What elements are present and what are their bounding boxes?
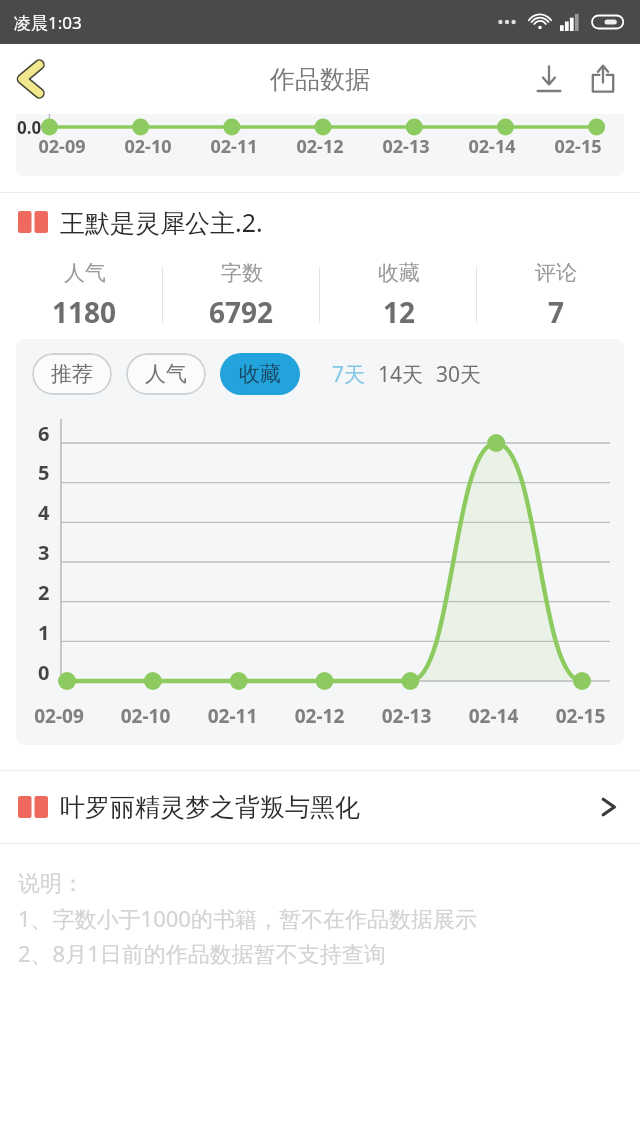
staticText: 7 — [548, 293, 565, 331]
staticText: 2、8月1日前的作品数据暂不支持查询 — [18, 938, 386, 968]
staticText: 02-10 — [105, 134, 191, 159]
staticText: 凌晨1:03 — [14, 11, 82, 34]
staticText: 3 — [38, 539, 50, 566]
staticText: 收藏 — [378, 260, 420, 286]
staticText: 推荐 — [51, 361, 93, 387]
staticText: 02-09 — [19, 134, 105, 159]
staticText: 4 — [38, 499, 50, 526]
button[interactable]: 收藏 — [220, 353, 300, 395]
staticText: 02-15 — [537, 703, 624, 729]
staticText: 人气 — [145, 361, 187, 387]
button[interactable]: 推荐 — [32, 353, 112, 395]
staticText: 12 — [383, 293, 416, 331]
staticText: 人气 — [64, 260, 106, 286]
staticText: 02-12 — [276, 703, 363, 729]
staticText: 王默是灵犀公主.2. — [60, 205, 263, 239]
staticText: 收藏 — [239, 361, 281, 387]
staticText: 1、字数小于1000的书籍，暂不在作品数据展示 — [18, 903, 477, 933]
button[interactable]: 30天 — [436, 360, 482, 389]
staticText: 5 — [38, 459, 50, 486]
staticText: 02-13 — [363, 703, 450, 729]
button[interactable]: 叶罗丽精灵梦之背叛与黑化 — [0, 771, 640, 843]
button[interactable]: Share — [576, 52, 630, 106]
staticText: 字数 — [221, 260, 263, 286]
staticText: 02-12 — [277, 134, 363, 159]
staticText: 6 — [38, 420, 50, 447]
staticText: 0.0 — [17, 116, 42, 139]
staticText: 0 — [38, 659, 50, 686]
staticText: 02-13 — [363, 134, 449, 159]
staticText: 1180 — [52, 293, 117, 331]
staticText: 02-11 — [189, 703, 276, 729]
button[interactable]: 7天 — [332, 360, 366, 389]
staticText: 1 — [38, 619, 50, 646]
staticText: 02-15 — [535, 134, 621, 159]
staticText: 02-14 — [450, 703, 537, 729]
button[interactable]: Download — [522, 52, 576, 106]
staticText: 02-11 — [191, 134, 277, 159]
button[interactable]: 王默是灵犀公主.2. — [0, 193, 640, 251]
button[interactable]: 人气 — [126, 353, 206, 395]
button[interactable]: Back — [0, 48, 62, 110]
staticText: 02-10 — [102, 703, 189, 729]
staticText: 评论 — [535, 260, 577, 286]
staticText: 作品数据 — [270, 64, 370, 95]
staticText: 2 — [38, 579, 50, 606]
button[interactable]: 14天 — [378, 360, 424, 389]
staticText: 6792 — [209, 293, 274, 331]
staticText: 02-14 — [449, 134, 535, 159]
staticText: 02-09 — [16, 703, 102, 729]
staticText: 说明： — [18, 870, 84, 898]
staticText: 叶罗丽精灵梦之背叛与黑化 — [60, 792, 600, 823]
